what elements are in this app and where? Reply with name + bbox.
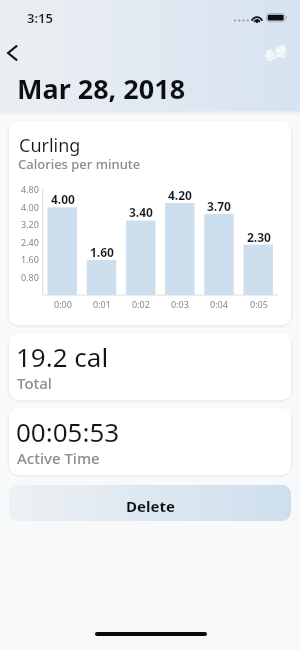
staticText: 3.40: [129, 204, 153, 220]
button[interactable]: Delete: [9, 485, 291, 521]
staticText: Calories per minute: [18, 155, 141, 173]
staticText: 00:05:53: [16, 414, 120, 449]
staticText: 2.40: [21, 236, 39, 248]
staticText: 0:01: [93, 298, 111, 310]
staticText: Active Time: [17, 448, 100, 468]
staticText: 2.30: [247, 229, 271, 245]
staticText: 4.20: [168, 187, 192, 203]
staticText: 3:15: [27, 9, 53, 27]
staticText: Curling: [19, 133, 81, 158]
staticText: Mar 28, 2018: [17, 70, 186, 107]
staticText: 3.20: [21, 218, 39, 230]
staticText: 1.60: [90, 244, 114, 260]
staticText: Total: [17, 373, 52, 393]
staticText: 3.70: [207, 198, 231, 214]
staticText: 0:02: [132, 298, 150, 310]
staticText: 0:03: [171, 298, 189, 310]
staticText: Delete: [126, 496, 175, 516]
staticText: 0.80: [21, 271, 39, 283]
staticText: 4.80: [21, 183, 39, 195]
button[interactable]: 19.2 cal: [9, 333, 291, 400]
button[interactable]: Back: [0, 36, 36, 70]
button[interactable]: 00:05:53: [9, 408, 291, 475]
button[interactable]: Curling activity: [258, 36, 294, 70]
staticText: 4.00: [51, 191, 75, 207]
staticText: 0:04: [210, 298, 228, 310]
staticText: 19.2 cal: [16, 339, 109, 374]
staticText: 0:05: [250, 298, 268, 310]
staticText: 1.60: [21, 253, 39, 265]
staticText: 0:00: [54, 298, 72, 310]
staticText: 4.00: [21, 201, 39, 213]
